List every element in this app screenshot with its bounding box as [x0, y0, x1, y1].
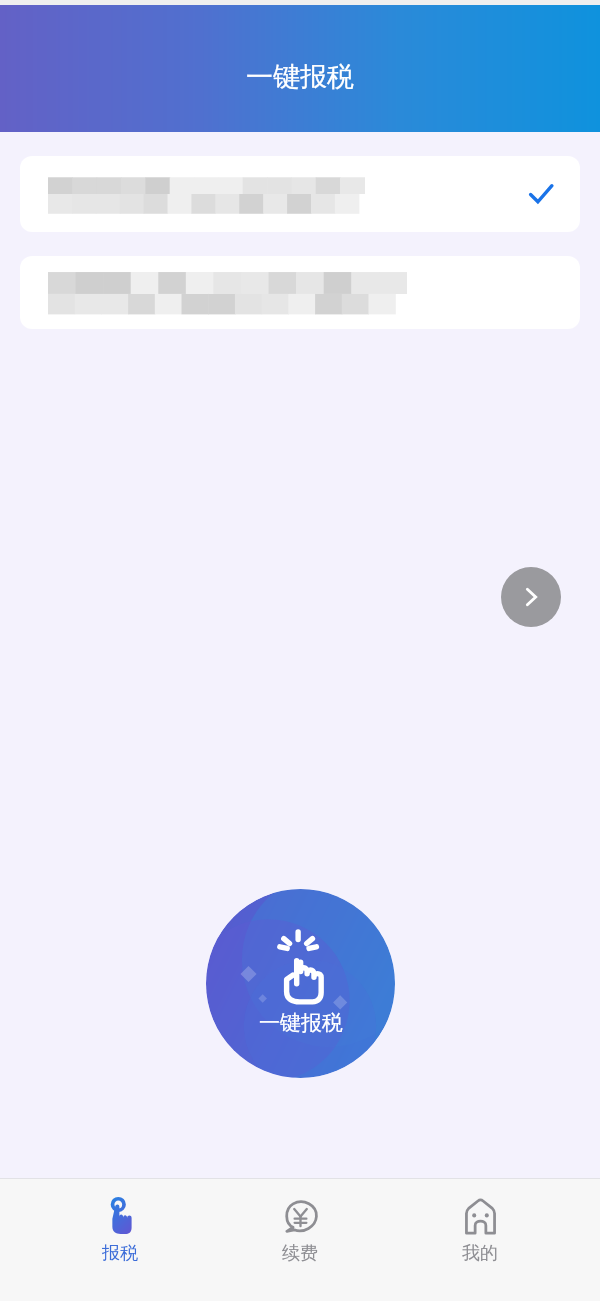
staticText: 一键报税	[246, 60, 354, 94]
staticText: 一键报税	[259, 1010, 343, 1036]
staticText: 报税	[102, 1242, 138, 1265]
button[interactable]: 我的	[420, 1196, 540, 1267]
button[interactable]: 续费	[240, 1196, 360, 1267]
staticText: 我的	[462, 1242, 498, 1265]
button[interactable]	[20, 156, 580, 232]
button[interactable]: 报税	[60, 1196, 180, 1267]
button[interactable]: 一键报税	[206, 889, 395, 1078]
button[interactable]: Next	[501, 567, 561, 627]
staticText: 续费	[282, 1242, 318, 1265]
button[interactable]	[20, 256, 580, 329]
